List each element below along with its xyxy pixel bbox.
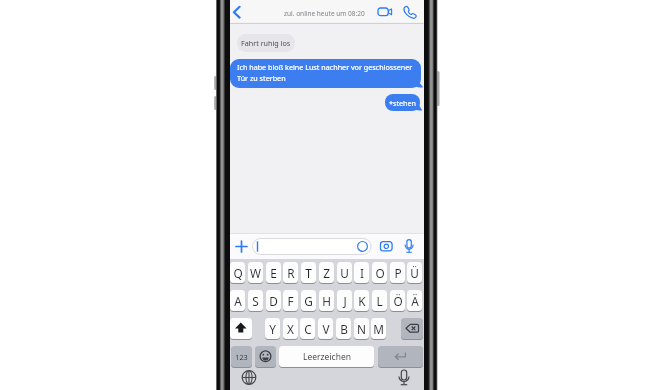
button[interactable] (241, 369, 257, 386)
staticText: G (304, 293, 313, 309)
staticText: R (287, 265, 295, 281)
staticText: M (373, 321, 384, 337)
staticText: U (340, 265, 349, 281)
button[interactable] (234, 239, 249, 254)
button[interactable]: W (248, 262, 263, 283)
button[interactable] (375, 5, 394, 19)
button[interactable]: G (301, 290, 316, 311)
button[interactable]: X (283, 318, 298, 339)
button[interactable]: R (283, 262, 298, 283)
button[interactable]: I (354, 262, 369, 283)
staticText: 123 (235, 352, 248, 362)
staticText: Z (323, 265, 330, 281)
button[interactable]: C (300, 318, 315, 339)
staticText: H (322, 293, 331, 309)
staticText: Tür zu sterben (237, 73, 286, 83)
staticText: T (305, 265, 312, 281)
button[interactable] (401, 318, 423, 339)
button[interactable]: O (372, 262, 387, 283)
button[interactable]: Q (230, 262, 245, 283)
button[interactable]: L (372, 290, 387, 311)
button[interactable] (378, 239, 394, 253)
button[interactable]: V (318, 318, 333, 339)
staticText: W (250, 265, 261, 281)
staticText: Ä (411, 293, 419, 309)
button[interactable]: K (354, 290, 369, 311)
staticText: V (322, 321, 330, 337)
staticText: X (287, 321, 294, 337)
button[interactable]: E (266, 262, 281, 283)
staticText: Leerzeichen (303, 351, 351, 363)
staticText: B (340, 321, 348, 337)
button[interactable]: A (230, 290, 245, 311)
staticText: Q (233, 265, 243, 281)
staticText: A (234, 293, 242, 309)
button[interactable] (378, 346, 423, 367)
staticText: S (252, 293, 259, 309)
button[interactable] (231, 3, 245, 21)
button[interactable]: H (319, 290, 334, 311)
button[interactable]: U (337, 262, 352, 283)
staticText: P (394, 265, 402, 281)
button[interactable] (402, 4, 419, 21)
button[interactable]: Ä (407, 290, 422, 311)
button[interactable]: D (266, 290, 281, 311)
button[interactable]: Leerzeichen (279, 346, 374, 367)
button[interactable]: F (283, 290, 298, 311)
button[interactable]: Ü (407, 262, 422, 283)
button[interactable]: Z (319, 262, 334, 283)
staticText: E (270, 265, 277, 281)
button[interactable]: J (337, 290, 352, 311)
button[interactable]: 123 (231, 346, 252, 367)
staticText: Y (269, 321, 276, 337)
staticText: L (376, 293, 383, 309)
staticText: Fahrt ruhig los (241, 38, 291, 48)
staticText: zul. online heute um 08:20 (284, 9, 365, 18)
staticText: K (358, 293, 366, 309)
staticText: I (360, 265, 364, 281)
button[interactable]: T (301, 262, 316, 283)
staticText: D (269, 293, 278, 309)
staticText: N (357, 321, 366, 337)
button[interactable] (230, 318, 252, 339)
button[interactable]: Ö (390, 290, 405, 311)
staticText: Ü (410, 265, 419, 281)
button[interactable]: zul. online heute um 08:20 (230, 0, 424, 23)
staticText: J (343, 293, 347, 309)
button[interactable]: S (248, 290, 263, 311)
button[interactable] (403, 238, 416, 254)
button[interactable]: M (371, 318, 386, 339)
staticText: Ö (393, 293, 403, 309)
button[interactable]: P (390, 262, 405, 283)
button[interactable]: Y (265, 318, 280, 339)
button[interactable]: N (354, 318, 369, 339)
staticText: Ich habe bloß keine Lust nachher vor ges… (237, 62, 413, 72)
staticText: C (304, 321, 312, 337)
button[interactable] (255, 346, 276, 367)
staticText: *stehen (389, 98, 416, 108)
button[interactable] (253, 239, 372, 255)
staticText: F (287, 293, 294, 309)
staticText: O (375, 265, 385, 281)
button[interactable] (396, 369, 412, 386)
button[interactable]: B (336, 318, 351, 339)
